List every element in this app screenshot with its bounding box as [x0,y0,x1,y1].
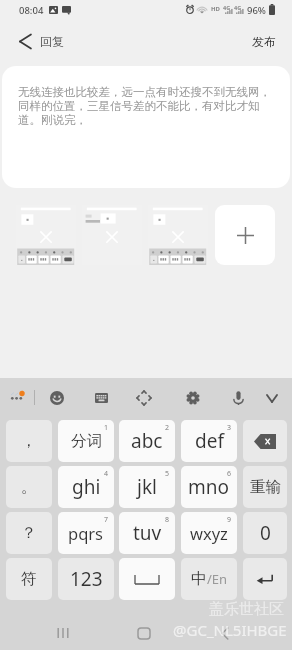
staticText: ghi [72,474,101,500]
button[interactable]: 无线连接也比较差，远一点有时还搜不到无线网，同样的位置，三星信号差的不能比，有对… [2,66,290,188]
button[interactable]: Keyboard layout [89,386,113,410]
button[interactable]: wxyz [181,512,237,554]
staticText: HD [211,5,220,13]
button[interactable]: Attached image [148,205,208,265]
button[interactable]: Space [119,558,175,600]
staticText: 3 [227,423,232,433]
button[interactable]: 123 [58,558,114,600]
staticText: wxyz [190,522,228,544]
button[interactable]: 。 [6,466,52,508]
button[interactable]: Move cursor [132,386,156,410]
staticText: 123 [70,566,103,592]
button[interactable]: ghi [58,466,114,508]
button[interactable]: Attached image [82,205,142,265]
staticText: 中 [191,569,207,589]
button[interactable]: Back [209,617,241,649]
button[interactable]: More options [6,387,28,409]
staticText: 1 [104,423,109,433]
staticText: jkl [137,474,157,500]
other: Space [135,575,159,584]
staticText: 4 [104,469,109,479]
staticText: 96% [247,4,266,17]
button[interactable]: Add image [215,205,275,265]
button[interactable]: ， [6,420,52,462]
button[interactable]: Recent apps [47,617,79,649]
staticText: tuv [133,520,162,546]
staticText: 重输 [250,477,281,497]
staticText: 回复 [40,34,64,49]
button[interactable]: Attached image [16,205,76,265]
button[interactable]: pqrs [58,512,114,554]
staticText: ？ [21,523,37,543]
button[interactable]: 分词 [58,420,114,462]
button[interactable]: 重输 [243,466,287,508]
staticText: 4G [223,4,231,11]
staticText: 5 [165,469,170,479]
staticText: 分词 [71,431,102,451]
button[interactable]: Home [128,617,160,649]
button[interactable]: Hide keyboard [260,386,284,410]
button[interactable]: Backspace [243,420,287,462]
button[interactable]: Back [19,22,64,60]
staticText: 2 [165,423,170,433]
staticText: 8 [165,515,170,525]
button[interactable]: mno [181,466,237,508]
staticText: 符 [21,569,37,589]
staticText: 0 [260,520,271,546]
staticText: mno [188,474,230,500]
button[interactable]: 发布 [236,22,292,60]
staticText: @GC_NL5IHBGE [173,620,287,640]
button[interactable]: 0 [243,512,287,554]
staticText: 7 [104,515,109,525]
button[interactable]: jkl [119,466,175,508]
staticText: 。 [21,477,37,497]
staticText: def [195,428,224,454]
button[interactable]: 中 [181,558,237,600]
staticText: 盖乐世社区 [209,600,284,619]
staticText: 4G [234,4,242,11]
button[interactable]: ？ [6,512,52,554]
staticText: 发布 [252,34,276,49]
staticText: 6 [227,469,232,479]
button[interactable]: 符 [6,558,52,600]
staticText: abc [131,428,163,454]
button[interactable]: tuv [119,512,175,554]
staticText: 08:04 [19,4,44,17]
staticText: ， [21,431,37,451]
button[interactable]: Enter [243,558,287,600]
button[interactable]: Emoji [45,386,69,410]
button[interactable]: Settings [181,386,205,410]
other: Backspace [254,434,276,449]
staticText: 无线连接也比较差，远一点有时还搜不到无线网，同样的位置，三星信号差的不能比，有对… [18,85,272,128]
staticText: /En [207,570,228,588]
other: Back [19,34,32,49]
button[interactable]: abc [119,420,175,462]
other: Enter [256,572,274,586]
button[interactable]: def [181,420,237,462]
button[interactable]: Voice input [226,386,250,410]
staticText: pqrs [68,522,104,544]
staticText: 9 [227,515,232,525]
